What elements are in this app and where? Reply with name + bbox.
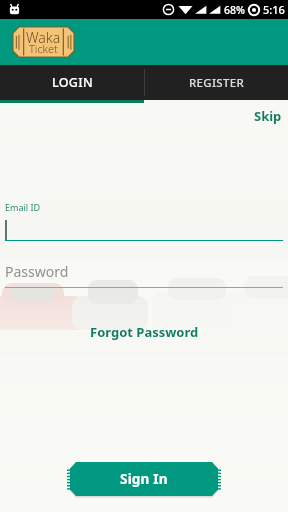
staticText: Password	[5, 262, 69, 281]
staticText: Forgot Password	[90, 323, 199, 341]
staticText: Ticket	[29, 41, 58, 56]
staticText: LOGIN	[52, 74, 93, 91]
staticText: Email ID	[5, 201, 41, 213]
staticText: Skip	[254, 107, 282, 125]
staticText: Waka	[26, 28, 61, 47]
button[interactable]: LOGIN	[0, 65, 144, 100]
staticText: 5:16	[263, 2, 285, 17]
staticText: 68%	[224, 3, 245, 17]
button[interactable]: Waka Ticket logo	[13, 27, 74, 57]
staticText: REGISTER	[189, 75, 244, 91]
button[interactable]: Skip	[248, 105, 288, 127]
button[interactable]: REGISTER	[144, 65, 288, 100]
staticText: Sign In	[120, 470, 168, 488]
button[interactable]: Forgot Password	[82, 320, 207, 344]
other: Notification	[9, 4, 20, 15]
button[interactable]: Sign In	[67, 462, 221, 496]
